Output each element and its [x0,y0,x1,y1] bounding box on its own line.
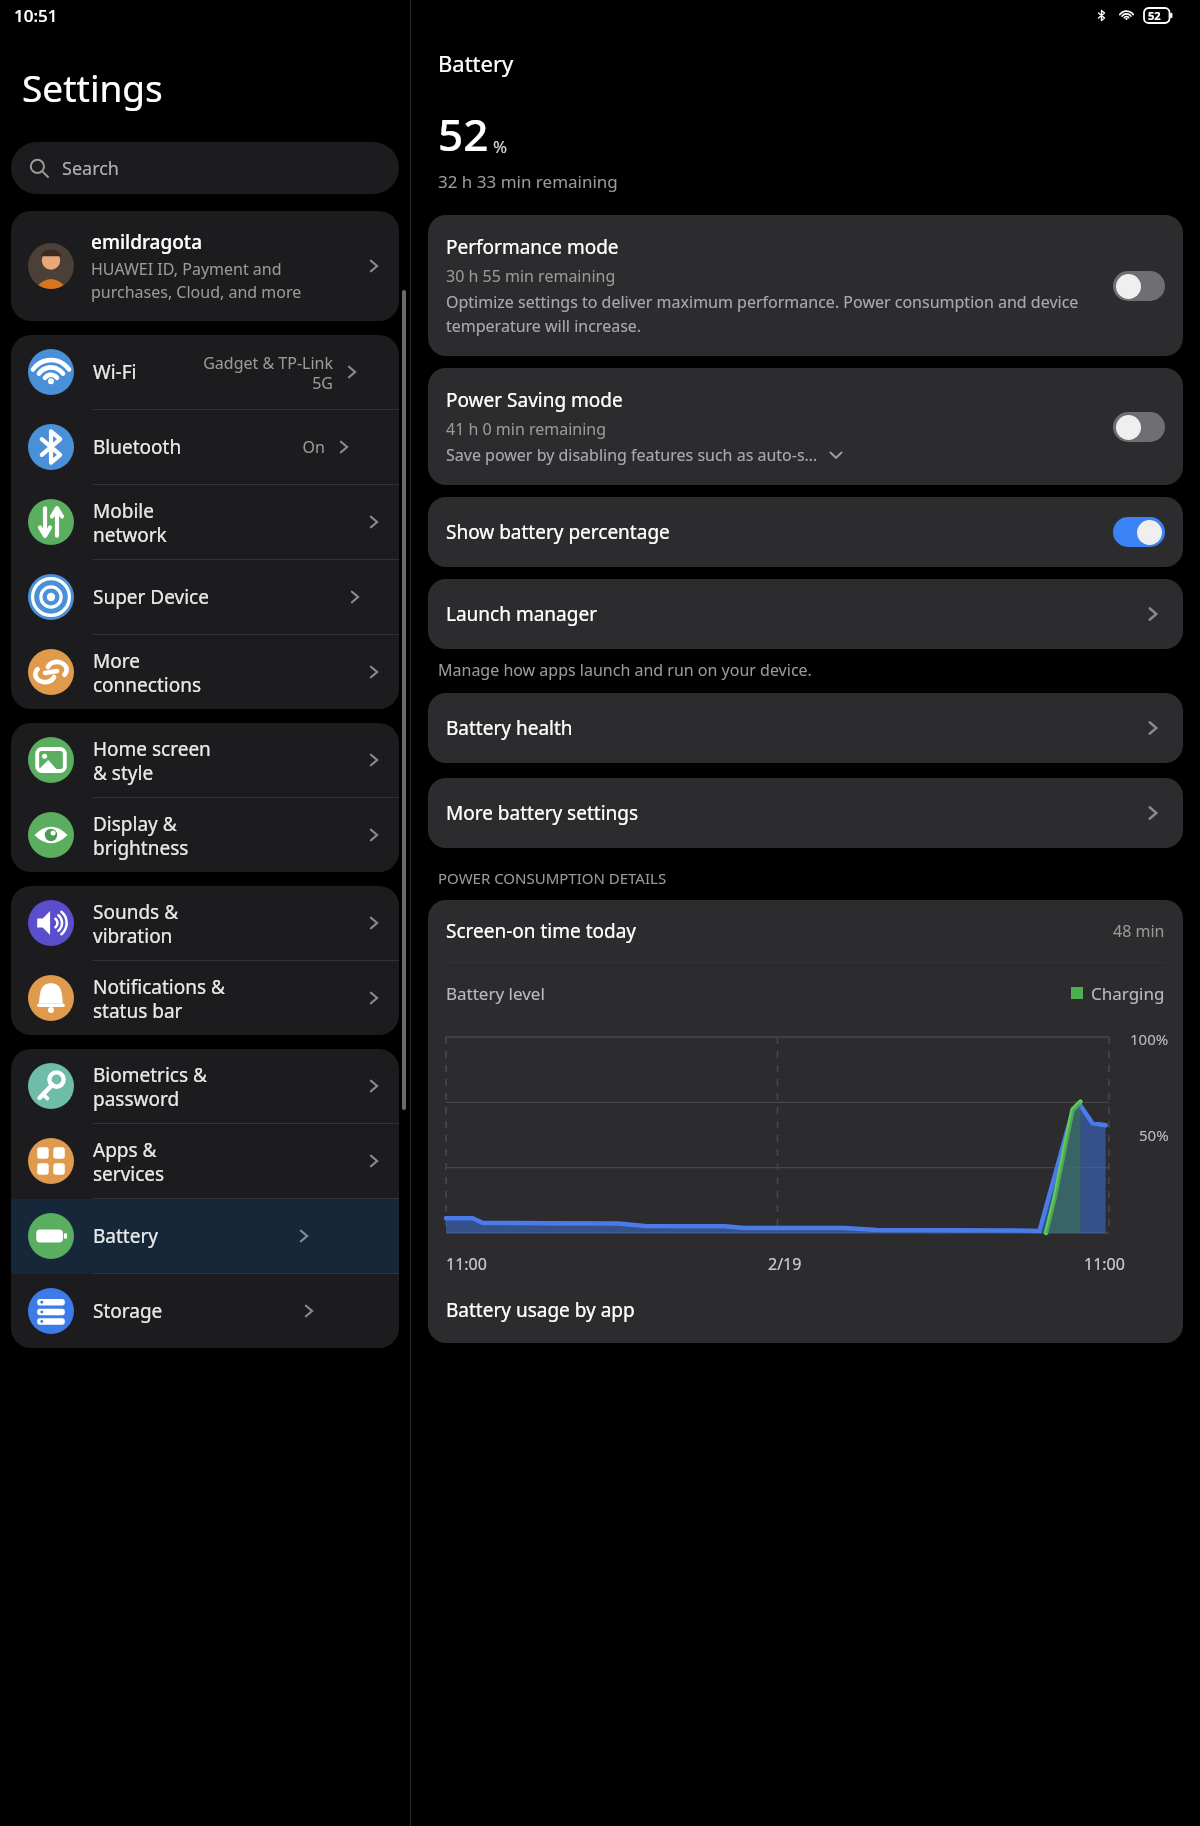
staticText: 11:00 [1084,1253,1125,1275]
staticText: Display & brightness [93,811,228,860]
staticText: Gadget & TP-Link 5G [203,352,333,393]
button[interactable]: Performance mode [428,215,1183,356]
staticText: 100% [1130,1029,1169,1049]
staticText: Charging [1091,982,1165,1005]
staticText: POWER CONSUMPTION DETAILS [438,868,667,888]
button[interactable]: Super Device [11,560,399,635]
staticText: 11:00 [446,1253,487,1275]
staticText: Battery [93,1223,158,1249]
staticText: Search [62,156,119,181]
staticText: 2/19 [768,1253,802,1275]
staticText: 41 h 0 min remaining [446,418,607,440]
button[interactable]: Display & brightness [11,798,399,872]
staticText: Apps & services [93,1137,228,1186]
staticText: Super Device [93,584,209,610]
button[interactable]: Home screen & style [11,723,399,798]
staticText: 32 h 33 min remaining [438,170,618,193]
staticText: emildragota [91,229,202,255]
staticText: Battery health [446,715,1141,741]
button[interactable]: Wi-Fi [11,335,399,410]
staticText: Bluetooth [93,434,182,460]
staticText: Save power by disabling features such as… [446,444,818,466]
staticText: 50% [1139,1125,1169,1145]
staticText: On [302,436,325,458]
staticText: More battery settings [446,800,1141,826]
button[interactable]: emildragota [11,211,399,321]
staticText: Screen-on time today [446,918,1113,944]
button[interactable]: More battery settings [428,778,1183,848]
button[interactable]: Notifications & status bar [11,961,399,1035]
staticText: Manage how apps launch and run on your d… [438,659,812,681]
staticText: Power Saving mode [446,387,623,413]
staticText: Settings [22,62,163,112]
staticText: Notifications & status bar [93,974,228,1023]
staticText: Optimize settings to deliver maximum per… [446,291,1099,337]
button[interactable]: Biometrics & password [11,1049,399,1124]
staticText: 10:51 [14,4,58,27]
button[interactable]: Show battery percentage [428,497,1183,567]
staticText: 30 h 55 min remaining [446,265,616,287]
staticText: Biometrics & password [93,1062,228,1111]
staticText: 52 [1148,8,1161,23]
staticText: Storage [93,1298,163,1324]
button[interactable]: Search [11,142,399,194]
staticText: Home screen & style [93,736,228,785]
staticText: More connections [93,648,228,697]
button[interactable]: Mobile network [11,485,399,560]
button[interactable]: Storage [11,1274,399,1348]
staticText: Sounds & vibration [93,899,228,948]
staticText: Launch manager [446,601,1141,627]
staticText: 52 [438,104,489,164]
button[interactable] [1113,517,1165,547]
staticText: % [493,135,508,158]
staticText: Battery level [446,982,1071,1005]
button[interactable]: Sounds & vibration [11,886,399,961]
button[interactable] [1113,412,1165,442]
button[interactable]: Battery [11,1199,399,1274]
staticText: Performance mode [446,234,619,260]
staticText: HUAWEI ID, Payment and purchases, Cloud,… [91,258,355,303]
button[interactable]: Battery health [428,693,1183,763]
staticText: Battery usage by app [446,1297,635,1323]
button[interactable]: Launch manager [428,579,1183,649]
button[interactable]: More connections [11,635,399,709]
button[interactable]: Bluetooth [11,410,399,485]
button[interactable] [1113,271,1165,301]
staticText: Wi-Fi [93,359,137,385]
staticText: Show battery percentage [446,519,1113,545]
button[interactable]: Apps & services [11,1124,399,1199]
staticText: Mobile network [93,498,228,547]
button[interactable]: Power Saving mode [428,368,1183,485]
staticText: 48 min [1113,920,1165,942]
staticText: Battery [438,48,514,78]
other: Expand [826,445,846,465]
